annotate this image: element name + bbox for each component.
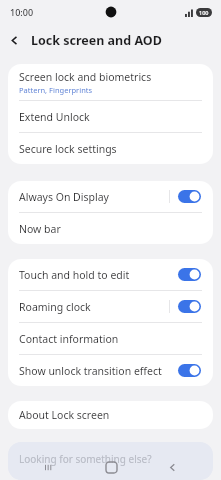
- button[interactable]: Back: [159, 454, 185, 480]
- button[interactable]: Touch and hold to edit: [178, 268, 201, 281]
- button[interactable]: Show unlock transition effect: [178, 364, 201, 377]
- button[interactable]: Extend Unlock: [8, 101, 213, 132]
- button[interactable]: Touch and hold to edit: [8, 259, 213, 290]
- staticText: Roaming clock: [19, 300, 91, 314]
- button[interactable]: Secure lock settings: [8, 133, 213, 164]
- staticText: Show unlock transition effect: [19, 364, 162, 378]
- button[interactable]: Always On Display: [8, 181, 213, 212]
- staticText: Secure lock settings: [19, 142, 117, 156]
- staticText: Always On Display: [19, 190, 109, 204]
- button[interactable]: About Lock screen: [8, 401, 213, 429]
- staticText: 10:00: [10, 6, 34, 18]
- button[interactable]: Recents: [36, 454, 62, 480]
- staticText: Lock screen and AOD: [31, 32, 162, 49]
- button[interactable]: Screen lock and biometrics: [8, 64, 213, 100]
- staticText: Looking for something else?: [19, 452, 152, 466]
- staticText: Screen lock and biometrics: [19, 70, 152, 84]
- button[interactable]: Roaming clock: [178, 300, 201, 313]
- staticText: 100: [199, 9, 209, 16]
- staticText: About Lock screen: [19, 408, 110, 422]
- button[interactable]: Home: [98, 454, 124, 480]
- button[interactable]: Show unlock transition effect: [8, 355, 213, 386]
- staticText: Contact information: [19, 332, 119, 346]
- staticText: Now bar: [19, 222, 61, 236]
- button[interactable]: Roaming clock: [8, 291, 213, 322]
- button[interactable]: Now bar: [8, 213, 213, 244]
- button[interactable]: Looking for something else?: [8, 442, 213, 480]
- button[interactable]: Contact information: [8, 323, 213, 354]
- staticText: Pattern, Fingerprints: [19, 85, 93, 95]
- staticText: Extend Unlock: [19, 110, 90, 124]
- staticText: Touch and hold to edit: [19, 268, 130, 282]
- button[interactable]: Back: [0, 26, 28, 54]
- button[interactable]: Always On Display: [178, 190, 201, 203]
